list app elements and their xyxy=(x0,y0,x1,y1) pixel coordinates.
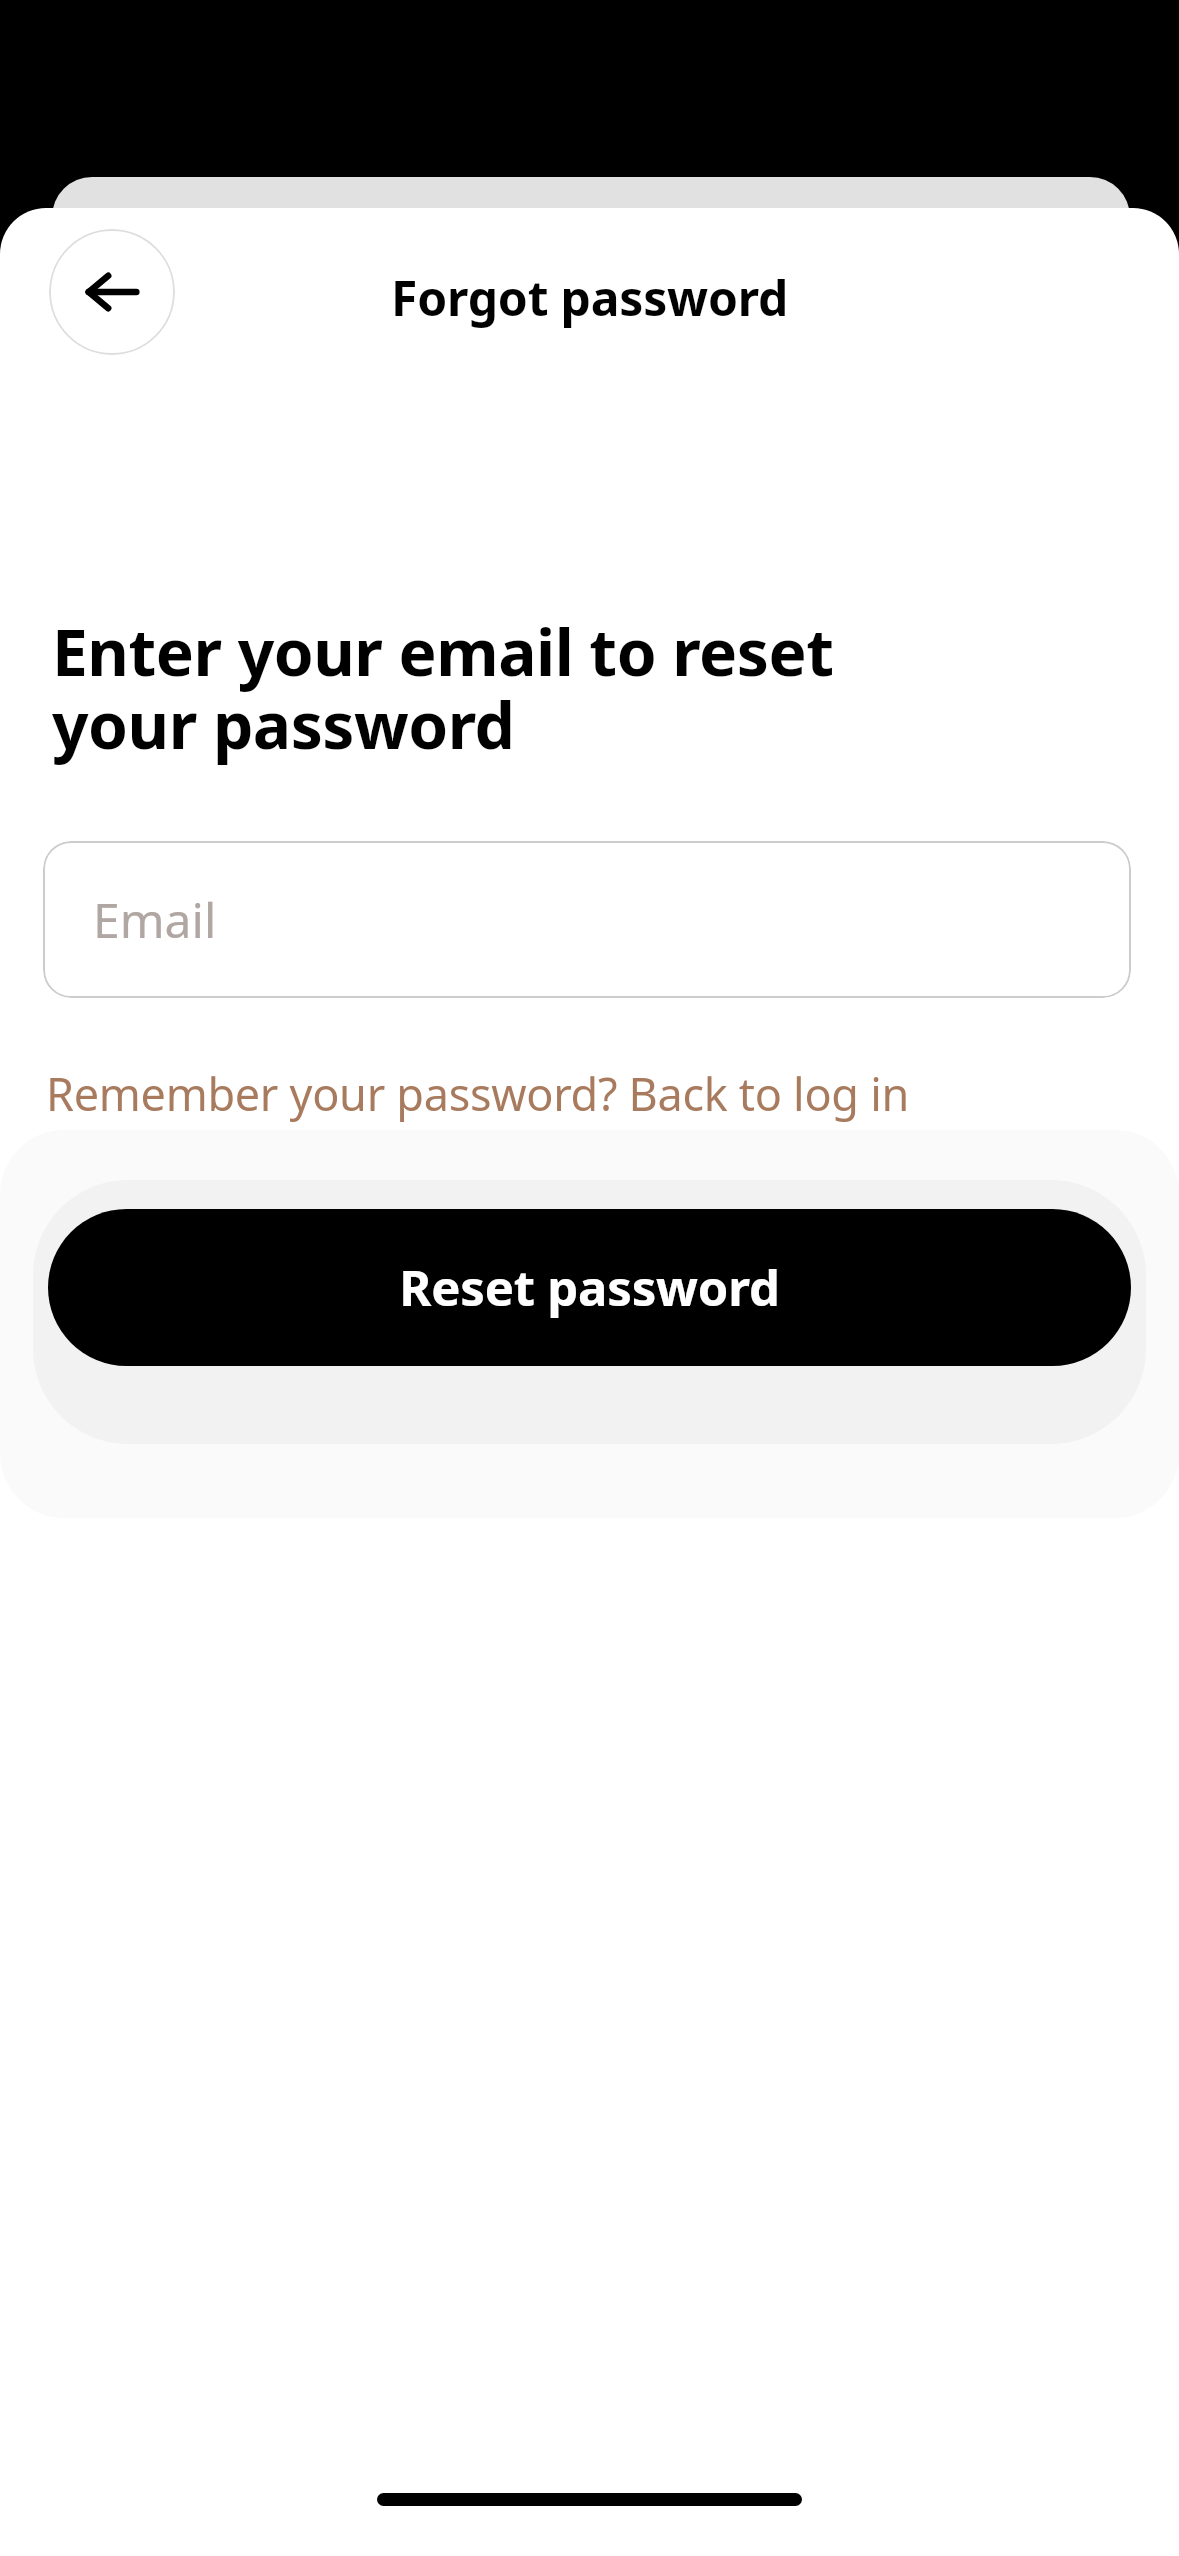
button[interactable]: Reset password xyxy=(48,1209,1131,1366)
button[interactable]: Remember your password? Back to log in xyxy=(46,1063,909,1124)
button[interactable]: Back xyxy=(49,229,175,355)
button[interactable]: Email xyxy=(43,841,1131,998)
staticText: Remember your password? Back to log in xyxy=(46,1063,909,1124)
staticText: Enter your email to reset your password xyxy=(52,608,952,768)
staticText: Forgot password xyxy=(391,265,789,330)
staticText: Email xyxy=(93,887,217,952)
staticText: Reset password xyxy=(399,1254,780,1321)
